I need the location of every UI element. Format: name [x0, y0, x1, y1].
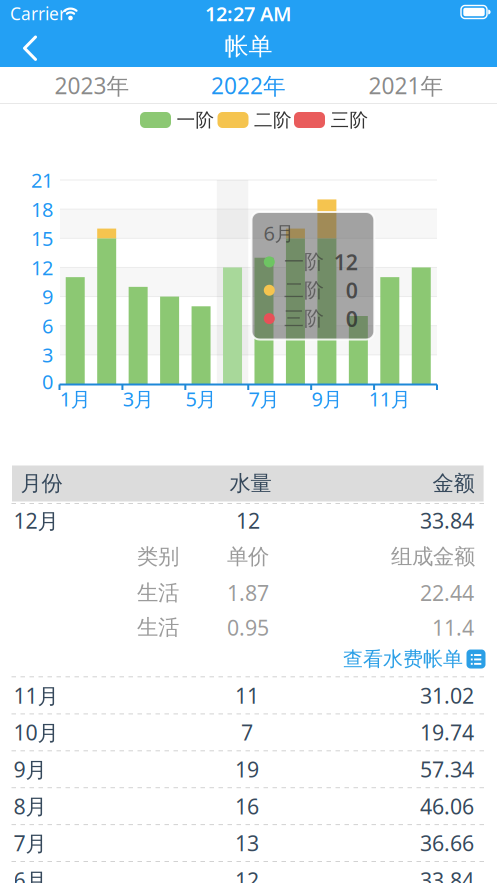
staticText: 查看水费帐单: [343, 647, 463, 671]
staticText: 0: [346, 276, 358, 304]
staticText: 12: [236, 506, 260, 534]
staticText: 12月: [13, 506, 58, 534]
staticText: 1.87: [227, 579, 269, 607]
staticText: 16: [235, 792, 259, 820]
staticText: 一阶: [176, 108, 214, 131]
button[interactable]: Back: [7, 27, 51, 69]
staticText: Carrier: [10, 2, 66, 25]
staticText: 6月: [13, 866, 46, 883]
staticText: 2023年: [54, 70, 129, 100]
button[interactable]: 11月: [0, 677, 497, 714]
staticText: 生活: [137, 580, 179, 606]
staticText: 1月: [60, 385, 91, 412]
staticText: 18: [31, 196, 53, 222]
staticText: 36.66: [420, 829, 474, 857]
staticText: 3: [42, 342, 53, 368]
button[interactable]: 2021年: [331, 67, 481, 103]
staticText: 2022年: [211, 70, 286, 100]
staticText: 11月: [369, 385, 411, 412]
staticText: 9月: [311, 385, 342, 412]
button[interactable]: 2022年: [173, 67, 323, 103]
staticText: 31.02: [420, 681, 474, 709]
staticText: 组成金额: [391, 543, 475, 570]
staticText: 19.74: [420, 718, 474, 746]
staticText: 类别: [137, 543, 179, 570]
staticText: 0: [42, 368, 53, 395]
staticText: 10月: [13, 718, 58, 746]
staticText: 57.34: [420, 755, 474, 783]
button[interactable]: 6月: [0, 861, 497, 883]
staticText: 金额: [432, 470, 474, 497]
staticText: 3月: [123, 385, 154, 412]
staticText: 2021年: [368, 70, 443, 100]
staticText: 生活: [137, 614, 179, 641]
staticText: 二阶: [284, 278, 324, 303]
staticText: 12:27 AM: [205, 0, 292, 27]
staticText: 13: [235, 829, 259, 857]
button[interactable]: 10月: [0, 714, 497, 751]
staticText: 一阶: [284, 250, 324, 274]
staticText: 33.84: [420, 866, 474, 883]
staticText: 7: [241, 718, 253, 746]
staticText: 19: [235, 755, 259, 783]
staticText: 12: [31, 254, 53, 281]
staticText: 帐单: [224, 32, 272, 61]
staticText: 水量: [229, 470, 271, 497]
staticText: 15: [31, 225, 53, 252]
staticText: 12: [235, 866, 259, 883]
staticText: 11.4: [432, 613, 474, 642]
staticText: 7月: [13, 829, 46, 857]
staticText: 11: [235, 681, 259, 709]
staticText: 11月: [13, 681, 58, 709]
button[interactable]: 2023年: [17, 67, 167, 103]
staticText: 33.84: [420, 506, 474, 534]
staticText: 0: [346, 304, 358, 333]
staticText: 三阶: [330, 108, 368, 131]
staticText: 7月: [248, 385, 279, 412]
button[interactable]: 7月: [0, 825, 497, 861]
staticText: 二阶: [254, 108, 292, 131]
staticText: 9: [42, 283, 53, 310]
staticText: 12: [334, 248, 358, 276]
staticText: 6月: [263, 220, 294, 246]
staticText: 21: [31, 167, 53, 193]
button[interactable]: 查看水费帐单: [300, 644, 485, 674]
staticText: 8月: [13, 792, 46, 820]
staticText: 6: [42, 312, 53, 339]
staticText: 5月: [186, 385, 217, 412]
staticText: 0.95: [227, 613, 269, 642]
staticText: 22.44: [420, 579, 474, 607]
staticText: 三阶: [284, 306, 324, 331]
staticText: 46.06: [420, 792, 474, 820]
staticText: 9月: [13, 755, 46, 783]
staticText: 月份: [20, 470, 62, 497]
button[interactable]: 9月: [0, 751, 497, 788]
button[interactable]: 8月: [0, 788, 497, 824]
staticText: 单价: [227, 543, 269, 570]
